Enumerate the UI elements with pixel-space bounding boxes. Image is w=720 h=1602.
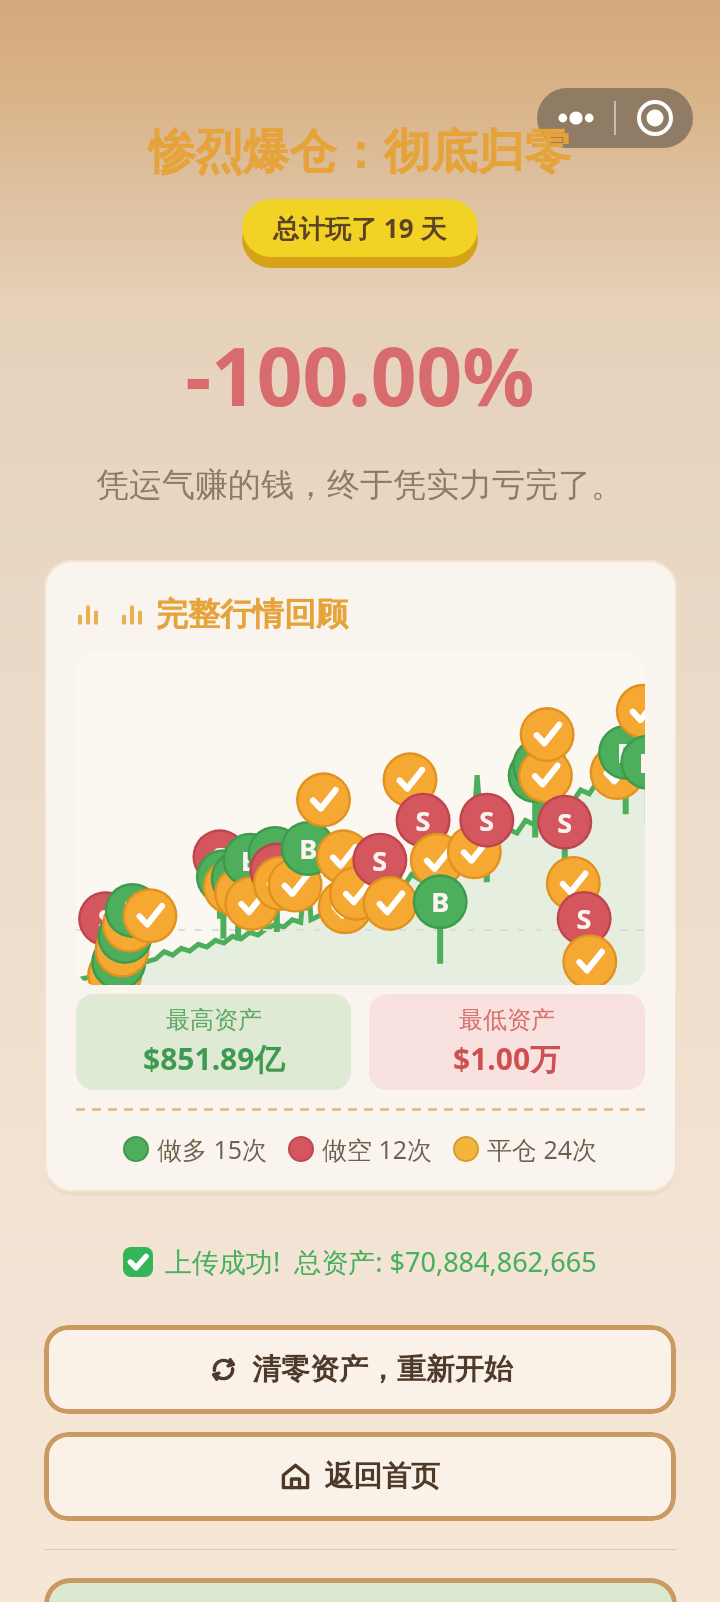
- staticText: 完整行情回顾: [156, 594, 348, 634]
- button[interactable]: [44, 1578, 677, 1602]
- button[interactable]: More options and close: [537, 88, 693, 148]
- staticText: 最高资产: [166, 1005, 262, 1035]
- staticText: 清零资产，重新开始: [252, 1351, 513, 1388]
- staticText: 做空 12次: [322, 1132, 433, 1166]
- staticText: 总计玩了 19 天: [273, 210, 447, 246]
- staticText: 平仓 24次: [487, 1132, 598, 1166]
- staticText: 上传成功! 总资产: $70,884,862,665: [165, 1243, 597, 1280]
- button[interactable]: 总计玩了 19 天: [242, 199, 478, 257]
- button[interactable]: 清零资产，重新开始: [44, 1325, 676, 1414]
- staticText: -100.00%: [0, 320, 720, 429]
- staticText: 惨烈爆仓：彻底归零: [0, 123, 720, 182]
- button[interactable]: 返回首页: [44, 1432, 676, 1521]
- staticText: 最低资产: [459, 1005, 555, 1035]
- staticText: 做多 15次: [157, 1132, 268, 1166]
- staticText: $1.00万: [453, 1038, 561, 1079]
- staticText: $851.89亿: [143, 1038, 285, 1079]
- staticText: 返回首页: [324, 1458, 440, 1495]
- staticText: 凭运气赚的钱，终于凭实力亏完了。: [0, 464, 720, 506]
